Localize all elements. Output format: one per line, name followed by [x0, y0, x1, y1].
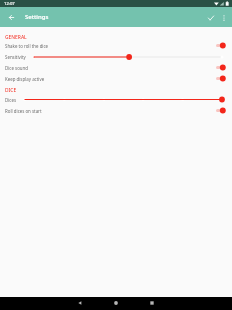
staticText: Keep display active [5, 76, 45, 82]
button[interactable]: Keep display active [0, 73, 232, 84]
staticText: Settings [25, 13, 49, 21]
button[interactable]: Back [0, 7, 20, 27]
staticText: DICE [5, 87, 17, 94]
staticText: Dices [5, 97, 17, 103]
button[interactable]: Roll dices on start [0, 105, 232, 116]
staticText: Roll dices on start [5, 108, 42, 114]
staticText: Dice sound [5, 65, 28, 71]
button[interactable]: Recents [146, 297, 158, 309]
staticText: Sensitivity [5, 54, 26, 60]
staticText: GENERAL [5, 34, 27, 41]
button[interactable]: Done [202, 9, 219, 26]
button[interactable]: Back [74, 297, 86, 309]
staticText: 12:07 [4, 1, 15, 7]
button[interactable]: Dice sound [0, 62, 232, 73]
staticText: Shake to roll the dice [5, 43, 49, 49]
button[interactable]: Shake to roll the dice [0, 40, 232, 51]
button[interactable]: Sensitivity [0, 51, 232, 62]
button[interactable]: Dices [0, 94, 232, 105]
button[interactable]: Home [110, 297, 122, 309]
button[interactable]: More options [219, 11, 228, 24]
